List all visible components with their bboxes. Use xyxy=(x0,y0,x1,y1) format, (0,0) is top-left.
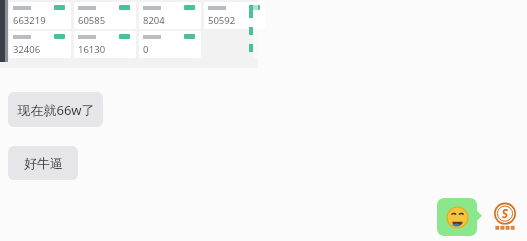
staticText: 16130 xyxy=(78,43,106,56)
button[interactable]: Shared screenshot xyxy=(0,0,258,68)
staticText: 8204 xyxy=(143,14,165,27)
staticText: 50592 xyxy=(208,14,236,27)
button[interactable]: 32406 xyxy=(9,31,71,58)
staticText: 0 xyxy=(143,43,149,56)
button[interactable]: 60585 xyxy=(74,2,136,29)
staticText: 60585 xyxy=(78,14,106,27)
staticText: 32406 xyxy=(13,43,41,56)
button[interactable]: 好牛逼 xyxy=(8,146,78,180)
button[interactable]: 8204 xyxy=(139,2,201,29)
button[interactable]: 50592 xyxy=(204,2,266,29)
staticText: 663219 xyxy=(13,14,46,27)
staticText: 好牛逼 xyxy=(24,155,63,171)
button[interactable]: 0 xyxy=(139,31,201,58)
button[interactable]: Sticker message xyxy=(437,198,482,236)
button[interactable]: 16130 xyxy=(74,31,136,58)
button[interactable]: 现在就66w了 xyxy=(8,92,103,127)
staticText: 现在就66w了 xyxy=(17,101,95,119)
button[interactable]: 663219 xyxy=(9,2,71,29)
